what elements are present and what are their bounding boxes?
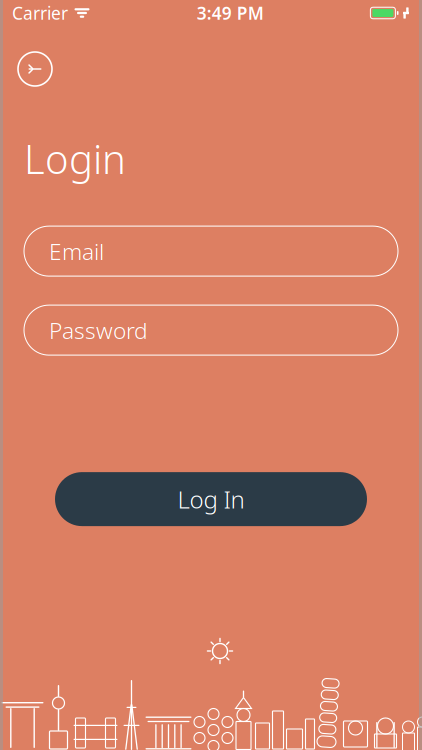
staticText: Carrier — [12, 1, 68, 24]
staticText: Login — [24, 132, 126, 185]
staticText: Email — [49, 236, 104, 266]
staticText: Password — [49, 315, 148, 345]
button[interactable]: Back — [18, 52, 52, 86]
staticText: Log In — [177, 483, 244, 515]
button[interactable]: Log In — [55, 472, 367, 526]
button[interactable]: Password — [24, 305, 398, 355]
staticText: 3:49 PM — [197, 1, 264, 24]
button[interactable]: Email — [24, 226, 398, 276]
